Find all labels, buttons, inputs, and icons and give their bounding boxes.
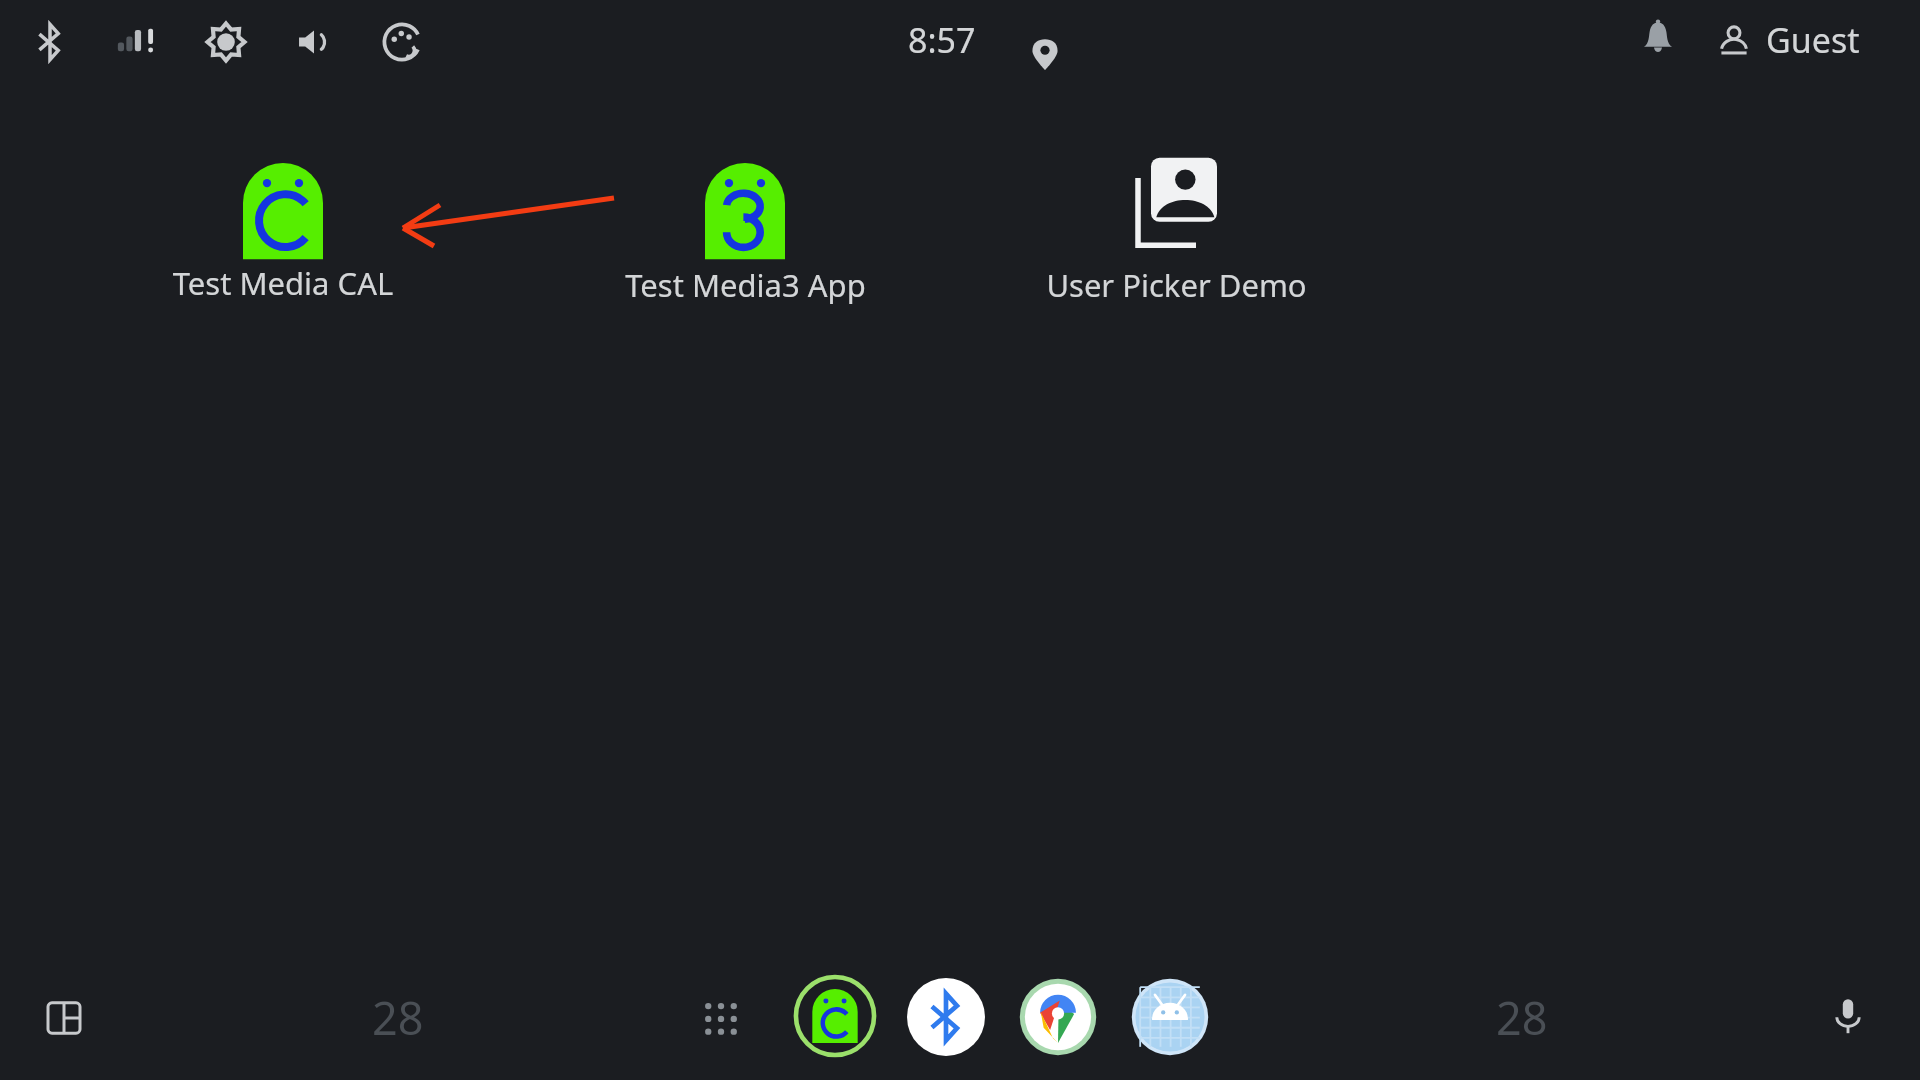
button[interactable]: Test Media CAL App [793, 974, 877, 1058]
button[interactable]: Maps [1019, 978, 1097, 1056]
button[interactable]: Bluetooth [28, 20, 72, 64]
button[interactable]: Android app [1131, 978, 1209, 1056]
button[interactable]: Brightness [204, 20, 248, 64]
button[interactable]: Guest [1716, 8, 1896, 72]
staticText: User Picker Demo [1046, 264, 1307, 306]
button[interactable]: Split screen [44, 998, 84, 1038]
button[interactable]: Theme [380, 20, 424, 64]
button[interactable]: Notifications [1638, 18, 1678, 58]
button[interactable]: Test Media3 App [604, 150, 886, 340]
staticText: Test Media3 App [625, 264, 866, 306]
button[interactable]: All apps [699, 996, 743, 1040]
button[interactable]: Volume [292, 20, 336, 64]
button[interactable]: User Picker Demo [1035, 150, 1317, 340]
button[interactable]: Bluetooth app [907, 978, 985, 1056]
staticText: 28 [1496, 987, 1548, 1048]
button[interactable]: 8:57 [908, 8, 1078, 72]
button[interactable]: Mobile signal [116, 20, 162, 66]
button[interactable]: Voice assistant [1828, 996, 1868, 1036]
staticText: 28 [372, 987, 424, 1048]
staticText: Test Media CAL App [142, 262, 424, 308]
staticText: Guest [1766, 17, 1860, 63]
button[interactable]: Test Media CAL App [142, 150, 424, 340]
staticText: 8:57 [908, 17, 976, 63]
